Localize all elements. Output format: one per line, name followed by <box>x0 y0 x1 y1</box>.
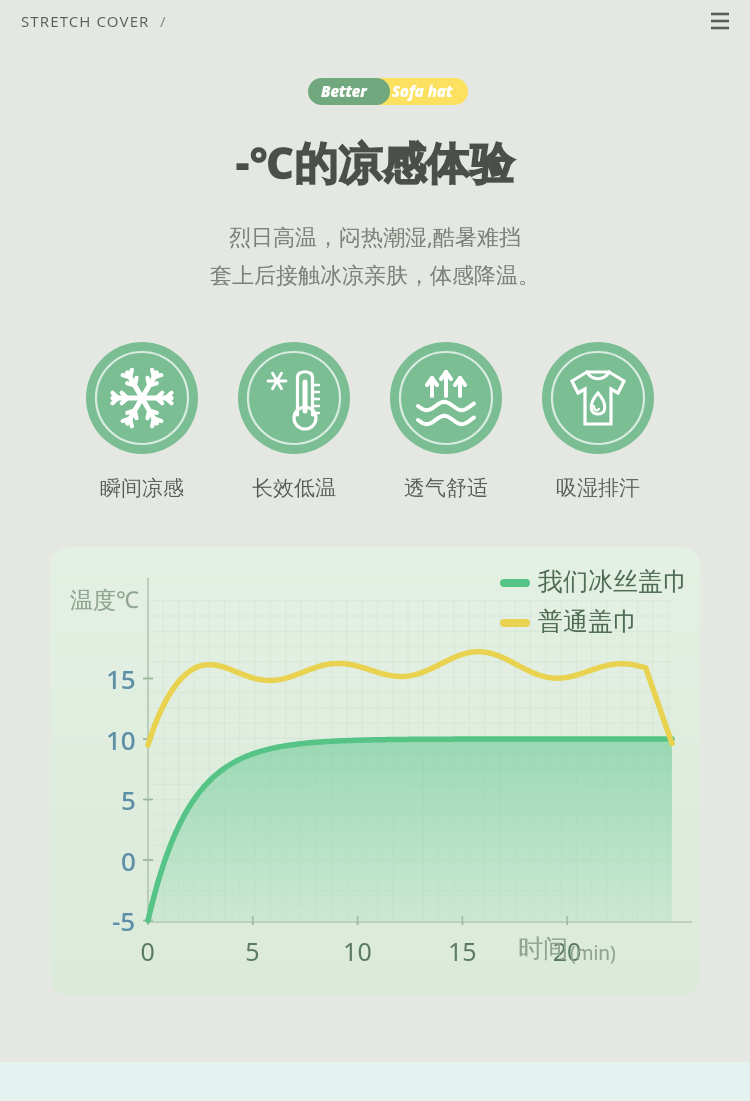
button[interactable]: Menu <box>700 2 746 42</box>
button[interactable] <box>50 547 700 996</box>
button[interactable] <box>14 6 174 34</box>
